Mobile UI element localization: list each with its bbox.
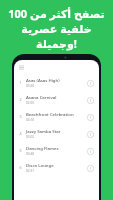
staticText: 03:02 [26,135,35,139]
staticText: 03:48 [26,152,35,156]
staticText: 02:55 [26,101,35,105]
button[interactable]: Download [84,128,96,140]
staticText: 1 [17,80,24,85]
button[interactable]: 3 [14,108,99,125]
button[interactable]: Download [84,145,96,157]
staticText: Disco Lounge [26,162,54,168]
staticText: 6 [17,165,24,170]
button[interactable]: Download [84,77,96,89]
staticText: Jazzy Samba Star [26,128,61,134]
staticText: 03:20 [26,84,35,88]
staticText: Asas (Asas High) [26,77,60,83]
staticText: Asana Carnival [26,94,57,100]
button[interactable]: Menu [17,63,26,72]
button[interactable]: 5 [14,142,99,159]
button[interactable]: 2 [14,91,99,108]
staticText: 3 [17,114,24,119]
staticText: 2 [17,97,24,102]
staticText: 4 [17,131,24,136]
staticText: Beachfront Celebration [26,111,74,117]
staticText: 02:31 [26,169,35,173]
staticText: وجميلة! [36,36,77,51]
button[interactable]: Download [84,94,96,106]
staticText: خلفية عصرية [21,21,92,36]
button[interactable]: Download [84,162,96,174]
button[interactable]: Download [84,111,96,123]
staticText: 04:10 [26,118,35,122]
button[interactable]: 1 [14,74,99,91]
button[interactable]: 4 [14,125,99,142]
staticText: 5 [17,148,24,153]
staticText: Dancing Flames [26,145,59,151]
staticText: تصفح أكثر من 100 [8,6,105,21]
button[interactable]: 6 [14,159,99,176]
